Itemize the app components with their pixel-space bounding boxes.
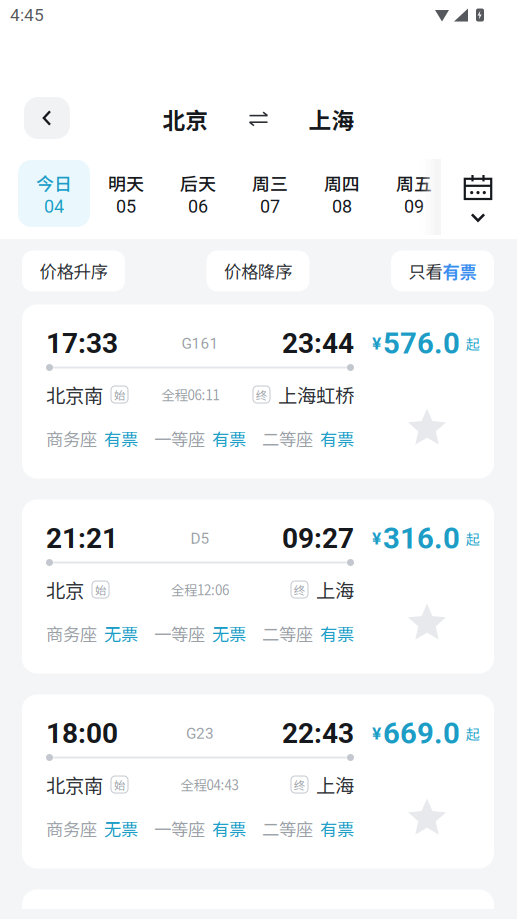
staticText: 21:21 (46, 522, 118, 555)
staticText: 上海 (316, 575, 354, 603)
staticText: 周四 (324, 170, 360, 196)
staticText: 一等座 (154, 621, 205, 646)
staticText: 周三 (252, 170, 288, 196)
staticText: 价格降序 (224, 258, 292, 284)
staticText: 一等座 (154, 426, 205, 451)
staticText: 商务座 (46, 426, 97, 451)
staticText: 后天 (180, 170, 216, 196)
staticText: 上海虹桥 (278, 380, 354, 408)
button[interactable]: 周三 (234, 160, 306, 227)
staticText: G23 (186, 724, 214, 742)
staticText: 有票 (212, 816, 246, 841)
staticText: 有票 (320, 816, 354, 841)
staticText: 22:43 (282, 717, 354, 750)
button[interactable]: 明天 (90, 160, 162, 227)
staticText: 全程06:11 (161, 385, 219, 404)
button[interactable]: 18:00 (22, 694, 494, 868)
staticText: 今日 (36, 170, 72, 196)
button[interactable]: Pick date (442, 164, 514, 232)
button[interactable]: 只看 (391, 250, 494, 291)
staticText: 明天 (108, 170, 144, 196)
staticText: 有票 (320, 621, 354, 646)
staticText: 始 (114, 386, 125, 403)
staticText: 09:27 (282, 522, 354, 555)
staticText: 终 (256, 386, 267, 403)
staticText: 二等座 (262, 816, 313, 841)
staticText: 576.0 (383, 326, 460, 361)
staticText: 北京南 (46, 770, 103, 798)
staticText: 北京南 (46, 380, 103, 408)
staticText: 07 (260, 196, 280, 217)
staticText: 价格升序 (39, 258, 107, 284)
staticText: 04 (44, 196, 64, 217)
staticText: 二等座 (262, 426, 313, 451)
staticText: 05 (116, 196, 136, 217)
staticText: 有票 (442, 258, 476, 284)
staticText: G161 (181, 334, 218, 352)
staticText: 08 (332, 196, 352, 217)
staticText: 起 (466, 723, 480, 744)
staticText: 二等座 (262, 621, 313, 646)
staticText: 始 (95, 581, 106, 598)
staticText: 4:45 (10, 5, 44, 25)
staticText: 商务座 (46, 816, 97, 841)
staticText: 只看 (408, 258, 442, 284)
staticText: 北京 (46, 575, 84, 603)
button[interactable]: 价格降序 (206, 250, 309, 291)
staticText: 始 (114, 776, 125, 793)
staticText: 北京 (162, 103, 208, 135)
staticText: 无票 (212, 621, 246, 646)
staticText: 有票 (212, 426, 246, 451)
staticText: 周五 (396, 170, 432, 196)
staticText: 有票 (104, 426, 138, 451)
staticText: 商务座 (46, 621, 97, 646)
button[interactable]: 后天 (162, 160, 234, 227)
staticText: 669.0 (383, 716, 460, 751)
staticText: 全程04:43 (180, 775, 238, 794)
staticText: 起 (466, 333, 480, 354)
staticText: 17:33 (46, 327, 118, 360)
button[interactable]: Back (24, 97, 70, 139)
staticText: ¥ (372, 333, 381, 354)
staticText: 无票 (104, 621, 138, 646)
staticText: 316.0 (383, 521, 460, 556)
staticText: 上海 (316, 770, 354, 798)
staticText: ¥ (372, 723, 381, 744)
staticText: 有票 (320, 426, 354, 451)
button[interactable]: 今日 (18, 160, 90, 227)
staticText: 09 (404, 196, 424, 217)
staticText: 23:44 (282, 327, 354, 360)
button[interactable]: 17:33 (22, 304, 494, 478)
staticText: D5 (190, 529, 209, 547)
staticText: 无票 (104, 816, 138, 841)
staticText: 全程12:06 (171, 580, 229, 599)
button[interactable]: 周五 (378, 160, 450, 227)
button[interactable]: 21:21 (22, 499, 494, 673)
button[interactable]: 18:04 (22, 889, 494, 919)
button[interactable]: 价格升序 (22, 250, 125, 291)
staticText: 06 (188, 196, 208, 217)
staticText: 18:00 (46, 717, 118, 750)
staticText: 起 (466, 528, 480, 549)
staticText: ¥ (372, 528, 381, 549)
staticText: 一等座 (154, 816, 205, 841)
staticText: 终 (294, 581, 305, 598)
button[interactable]: 周四 (306, 160, 378, 227)
staticText: 上海 (308, 103, 354, 135)
staticText: 终 (294, 776, 305, 793)
